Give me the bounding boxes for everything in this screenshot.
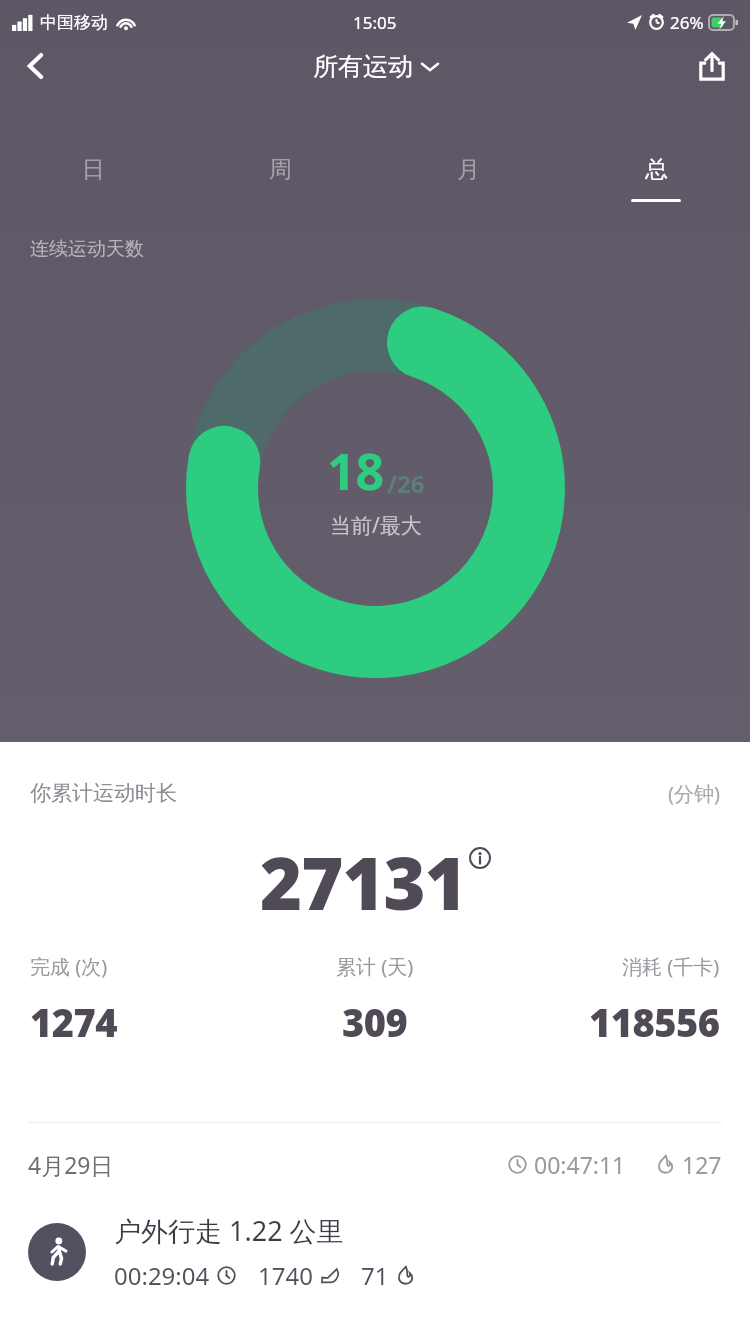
staticText: 71: [361, 1259, 389, 1292]
staticText: 00:29:04: [114, 1259, 210, 1292]
staticText: 4月29日: [28, 1149, 114, 1180]
button[interactable]: Back: [8, 44, 64, 88]
button[interactable]: 所有运动: [305, 47, 446, 86]
staticText: 你累计运动时长: [30, 780, 177, 806]
staticText: 日: [82, 155, 105, 184]
staticText: 总: [645, 155, 668, 184]
staticText: 所有运动: [313, 51, 413, 82]
staticText: 1274: [30, 996, 118, 1048]
button[interactable]: Share: [684, 44, 740, 88]
staticText: 00:47:11: [534, 1149, 626, 1180]
staticText: 309: [342, 996, 408, 1048]
staticText: 中国移动: [40, 12, 108, 33]
staticText: 当前/最大: [330, 511, 422, 540]
staticText: 消耗 (千卡): [622, 953, 720, 980]
staticText: 127: [682, 1149, 722, 1180]
staticText: (分钟): [668, 780, 720, 807]
staticText: 18: [327, 437, 385, 505]
staticText: 月: [457, 155, 480, 184]
staticText: 周: [269, 155, 292, 184]
button[interactable]: 周: [187, 135, 374, 205]
staticText: 累计 (天): [336, 953, 414, 980]
staticText: 118556: [589, 996, 720, 1048]
button[interactable]: 总: [562, 135, 750, 205]
staticText: 15:05: [353, 11, 397, 34]
staticText: 户外行走 1.22 公里: [114, 1212, 344, 1249]
staticText: 完成 (次): [30, 953, 108, 980]
staticText: 27131: [260, 833, 466, 931]
staticText: /26: [387, 467, 425, 500]
staticText: 1740: [258, 1259, 313, 1292]
staticText: 26%: [670, 11, 704, 34]
button[interactable]: 户外行走 1.22 公里: [0, 1212, 750, 1292]
staticText: 连续运动天数: [30, 237, 144, 261]
button[interactable]: 月: [374, 135, 562, 205]
button[interactable]: 日: [0, 135, 187, 205]
